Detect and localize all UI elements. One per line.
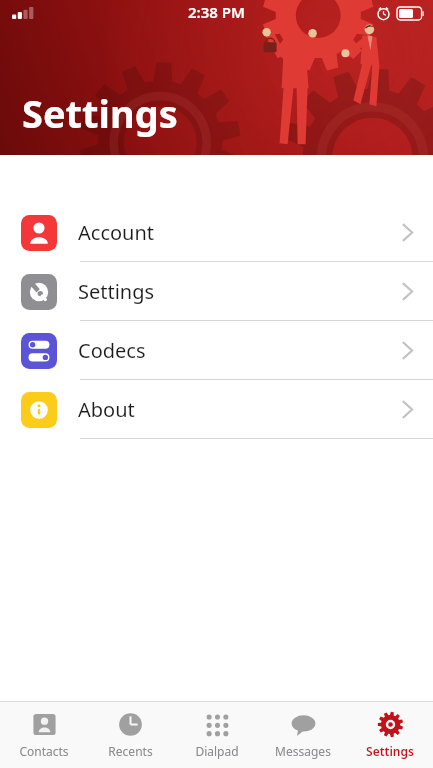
staticText: Account: [78, 219, 155, 246]
button[interactable]: Codecs: [0, 321, 433, 380]
staticText: Dialpad: [195, 743, 239, 759]
staticText: Messages: [275, 743, 331, 759]
staticText: Settings: [78, 278, 155, 305]
button[interactable]: Settings: [347, 702, 433, 768]
button[interactable]: Dialpad: [174, 702, 260, 768]
button[interactable]: Settings: [0, 262, 433, 321]
staticText: 2:38 PM: [188, 2, 245, 22]
staticText: Codecs: [78, 337, 146, 364]
staticText: Settings: [366, 743, 414, 759]
button[interactable]: Recents: [87, 702, 173, 768]
staticText: Contacts: [19, 743, 69, 759]
staticText: Settings: [22, 87, 178, 139]
staticText: About: [78, 396, 135, 423]
button[interactable]: Contacts: [1, 702, 87, 768]
button[interactable]: Account: [0, 203, 433, 262]
staticText: Recents: [108, 743, 153, 759]
button[interactable]: Messages: [260, 702, 346, 768]
button[interactable]: About: [0, 380, 433, 439]
